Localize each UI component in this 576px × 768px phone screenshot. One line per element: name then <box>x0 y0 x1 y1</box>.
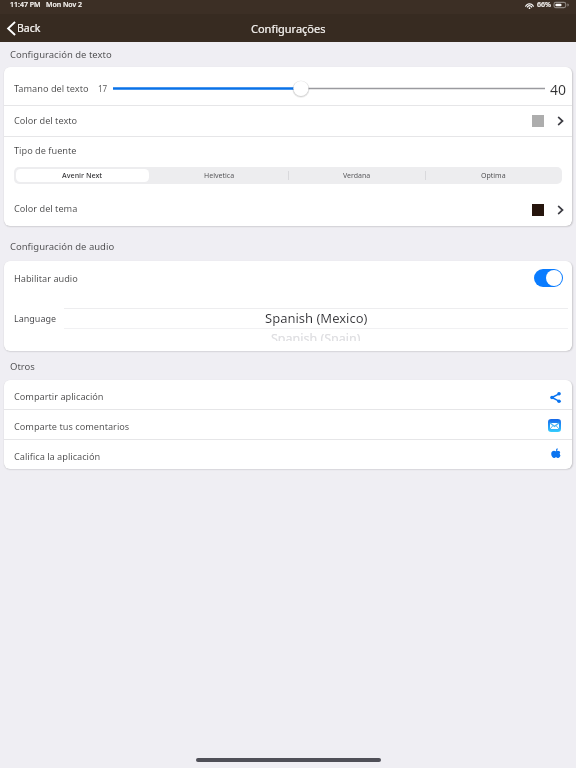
staticText: Comparte tus comentarios <box>14 420 130 433</box>
button[interactable]: Optima <box>425 167 562 184</box>
staticText: Tamano del texto <box>14 82 89 95</box>
staticText: Helvetica <box>204 171 235 181</box>
staticText: Color del texto <box>14 114 78 127</box>
staticText: Habilitar audio <box>14 272 78 285</box>
button[interactable]: Avenir Next <box>14 167 151 184</box>
button[interactable]: Califica la aplicación <box>4 440 572 469</box>
button[interactable]: Compartir aplicación <box>4 380 572 409</box>
staticText: Optima <box>481 171 506 181</box>
other: Comparte tus comentarios <box>548 419 561 432</box>
staticText: Back <box>17 21 41 35</box>
staticText: Color del tema <box>14 202 78 215</box>
staticText: Spanish (Mexico) <box>265 309 368 327</box>
button[interactable]: Helvetica <box>151 167 288 184</box>
button[interactable]: Color del tema <box>4 193 572 226</box>
button[interactable]: Verdana <box>288 167 425 184</box>
other: Califica la aplicación <box>551 448 561 458</box>
staticText: Tipo de fuente <box>14 144 77 157</box>
staticText: 66% <box>537 0 551 10</box>
staticText: Califica la aplicación <box>14 450 101 463</box>
button[interactable]: Back <box>0 18 51 38</box>
staticText: 40 <box>550 80 567 99</box>
button[interactable]: Comparte tus comentarios <box>4 410 572 439</box>
staticText: Verdana <box>343 171 371 181</box>
staticText: Language <box>14 312 57 324</box>
other: Compartir aplicación <box>550 392 561 403</box>
staticText: Mon Nov 2 <box>46 0 82 10</box>
button[interactable]: Habilitar audio <box>534 269 563 287</box>
staticText: Configuración de audio <box>10 240 115 253</box>
staticText: Configuración de texto <box>10 48 112 61</box>
staticText: 11:47 PM <box>10 0 41 10</box>
staticText: Configurações <box>251 21 326 36</box>
staticText: Spanish (Spain) <box>271 330 361 341</box>
staticText: Compartir aplicación <box>14 390 104 403</box>
staticText: Otros <box>10 360 35 373</box>
button[interactable]: Color del texto <box>4 106 572 136</box>
staticText: Avenir Next <box>62 171 103 181</box>
staticText: 17 <box>98 83 108 94</box>
